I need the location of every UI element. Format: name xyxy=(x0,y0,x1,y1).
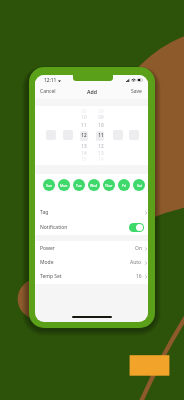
button[interactable]: Sat xyxy=(133,179,145,191)
button[interactable]: Notification xyxy=(35,220,148,235)
button[interactable]: selected value xyxy=(80,131,88,141)
button[interactable]: Power xyxy=(35,241,148,255)
button[interactable]: selected value xyxy=(96,131,104,141)
staticText: Mon xyxy=(60,183,68,188)
staticText: 10 xyxy=(98,122,104,128)
staticText: Power xyxy=(40,245,55,252)
button[interactable]: Save xyxy=(130,88,143,95)
staticText: Tag xyxy=(40,209,49,216)
button[interactable]: Mode xyxy=(35,255,148,269)
button[interactable]: Wed xyxy=(88,179,100,191)
staticText: 12 xyxy=(81,132,87,138)
staticText: 12:11 xyxy=(44,77,57,84)
staticText: 11 xyxy=(98,132,104,138)
staticText: Sat xyxy=(137,183,142,188)
staticText: Add xyxy=(87,88,97,95)
button[interactable]: Sun xyxy=(43,179,55,191)
staticText: Fri xyxy=(122,183,127,188)
staticText: 08 xyxy=(98,108,104,114)
staticText: 14 xyxy=(81,150,87,156)
button[interactable]: Tue xyxy=(73,179,85,191)
button[interactable]: Thur xyxy=(103,179,115,191)
staticText: 11 xyxy=(81,122,87,128)
staticText: Auto xyxy=(130,259,142,266)
staticText: 16 xyxy=(136,273,142,280)
button[interactable]: Mon xyxy=(58,179,70,191)
staticText: Thur xyxy=(105,183,113,188)
staticText: On xyxy=(135,245,142,252)
button[interactable]: Tag xyxy=(35,205,148,220)
staticText: 15 xyxy=(81,156,87,162)
button[interactable]: Cancel xyxy=(39,88,57,95)
button[interactable]: Temp Set xyxy=(35,269,148,283)
button[interactable]: Fri xyxy=(118,179,130,191)
staticText: 09 xyxy=(98,114,104,120)
staticText: Sun xyxy=(46,183,53,188)
staticText: 13 xyxy=(98,150,104,156)
staticText: 13 xyxy=(81,143,87,149)
staticText: 12 xyxy=(98,143,104,149)
staticText: 09 xyxy=(81,108,87,114)
staticText: 14 xyxy=(98,156,104,162)
staticText: 10 xyxy=(81,114,87,120)
staticText: Notification xyxy=(40,224,68,231)
staticText: Tue xyxy=(76,183,82,188)
staticText: Mode xyxy=(40,259,54,266)
button[interactable]: Notification toggle xyxy=(129,223,144,232)
staticText: Temp Set xyxy=(40,273,62,280)
staticText: Wed xyxy=(90,183,98,188)
